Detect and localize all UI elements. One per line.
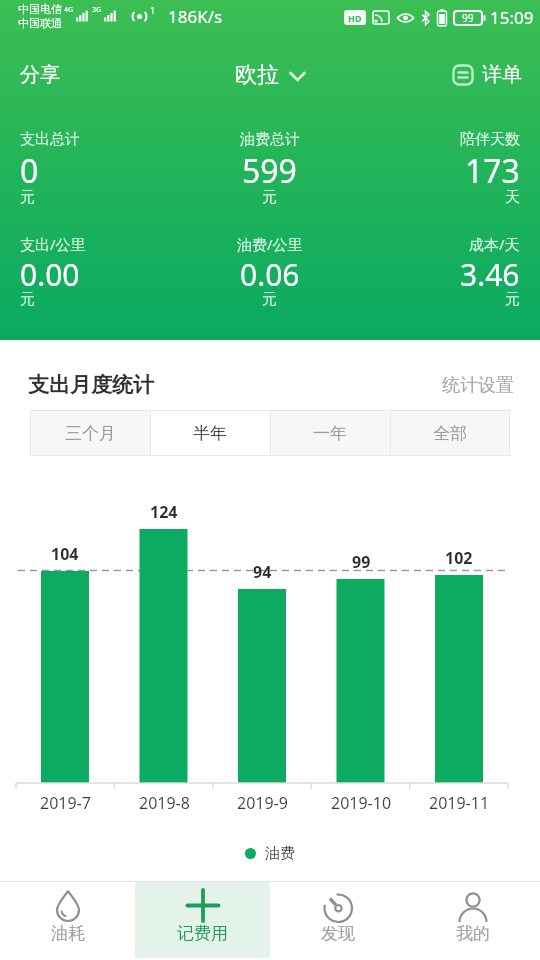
staticText: 油费总计 (240, 130, 300, 149)
button[interactable]: 欧拉 (235, 61, 306, 89)
staticText: 支出总计 (20, 130, 80, 149)
staticText: 我的 (456, 923, 490, 944)
staticText: 成本/天 (469, 234, 520, 254)
staticText: 124 (150, 501, 178, 523)
button[interactable]: 统计设置 (442, 374, 514, 397)
staticText: 15:09 (490, 6, 534, 29)
staticText: 102 (445, 547, 473, 569)
staticText: 中国电信 (18, 2, 62, 16)
staticText: 4G (64, 5, 74, 15)
staticText: 3G (92, 5, 102, 15)
staticText: 2019-10 (331, 792, 392, 814)
staticText: 中国联通 (18, 16, 62, 30)
staticText: 元 (20, 290, 35, 309)
button[interactable]: 全部 (390, 410, 510, 456)
staticText: 186K/s (168, 5, 223, 28)
button[interactable]: 我的 (405, 882, 540, 958)
staticText: 2019-11 (429, 792, 490, 814)
button[interactable]: 发现 (270, 882, 405, 958)
staticText: 元 (20, 188, 35, 207)
staticText: 三个月 (65, 423, 116, 444)
staticText: 天 (505, 188, 520, 207)
staticText: 3.46 (460, 254, 520, 295)
staticText: 2019-8 (139, 792, 190, 814)
staticText: HD (348, 12, 362, 24)
staticText: 173 (465, 149, 520, 193)
staticText: 0 (20, 149, 39, 193)
staticText: 支出/公里 (20, 234, 86, 254)
button[interactable]: 详单 (452, 62, 522, 87)
staticText: 陪伴天数 (460, 130, 520, 149)
staticText: 一年 (313, 423, 347, 444)
button[interactable]: 一年 (270, 410, 390, 456)
staticText: 元 (262, 290, 277, 309)
staticText: 半年 (193, 423, 227, 444)
staticText: 详单 (482, 62, 522, 87)
staticText: 2019-9 (237, 792, 288, 814)
staticText: 99 (462, 11, 474, 25)
button[interactable]: 记费用 (135, 882, 270, 958)
staticText: 油耗 (51, 923, 85, 944)
staticText: 1 (150, 4, 156, 16)
button[interactable]: 油耗 (0, 882, 135, 958)
staticText: 599 (242, 149, 297, 193)
button[interactable]: 三个月 (30, 410, 150, 456)
staticText: 全部 (433, 423, 467, 444)
staticText: 欧拉 (235, 61, 279, 89)
staticText: 元 (505, 290, 520, 309)
staticText: 记费用 (177, 923, 228, 944)
button[interactable]: 分享 (20, 62, 60, 87)
staticText: 99 (352, 551, 371, 573)
staticText: 油费 (265, 844, 295, 863)
staticText: 2019-7 (40, 792, 91, 814)
staticText: 104 (51, 543, 79, 565)
staticText: 元 (262, 188, 277, 207)
staticText: 油费/公里 (237, 234, 303, 254)
button[interactable]: 半年 (150, 410, 270, 456)
staticText: 0.06 (240, 254, 300, 295)
staticText: 94 (253, 561, 272, 583)
staticText: 发现 (321, 923, 355, 944)
staticText: 支出月度统计 (28, 372, 154, 398)
staticText: 0.00 (20, 254, 80, 295)
